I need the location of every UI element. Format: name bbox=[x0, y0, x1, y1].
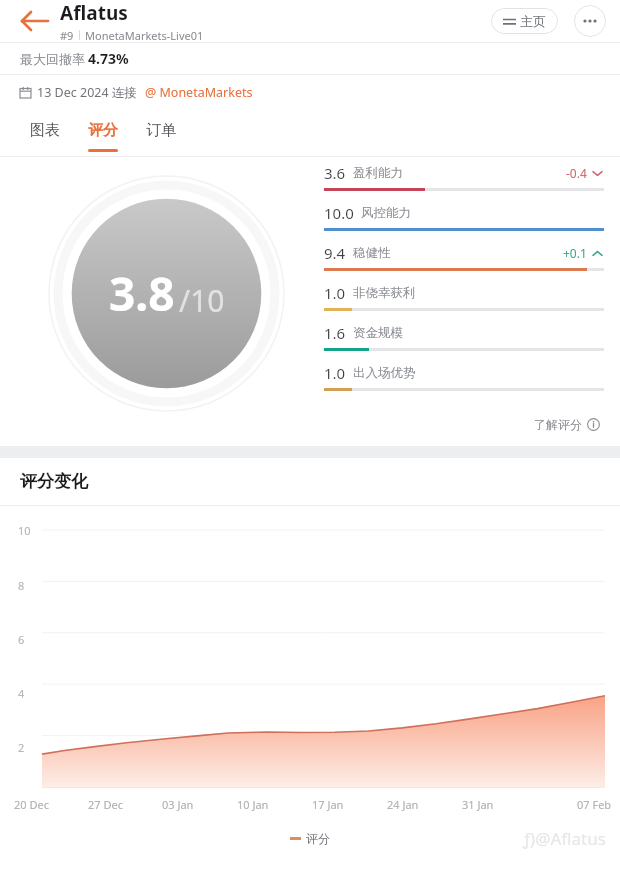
staticText: 出入场优势 bbox=[353, 365, 416, 381]
staticText: 17 Jan bbox=[312, 797, 344, 812]
staticText: 4 bbox=[18, 686, 25, 701]
staticText: -0.4 bbox=[566, 165, 587, 181]
staticText: 最大回撤率 bbox=[20, 51, 85, 67]
staticText: 稳健性 bbox=[353, 245, 391, 261]
staticText: 评分 bbox=[306, 831, 330, 846]
button[interactable]: More options bbox=[574, 5, 606, 37]
staticText: 1.0 bbox=[324, 363, 346, 383]
button[interactable]: 9.4 bbox=[324, 243, 604, 283]
staticText: 3.8 bbox=[109, 262, 175, 325]
staticText: +0.1 bbox=[563, 245, 587, 261]
staticText: #9 bbox=[60, 28, 74, 42]
button[interactable]: 10.0 bbox=[324, 203, 604, 243]
staticText: 3.6 bbox=[324, 163, 346, 183]
staticText: MonetaMarkets-Live01 bbox=[85, 28, 204, 42]
staticText: Aflatus bbox=[60, 0, 128, 26]
staticText: 主页 bbox=[520, 13, 546, 29]
button[interactable]: 主页 bbox=[491, 8, 558, 34]
staticText: 评分变化 bbox=[20, 471, 88, 492]
staticText: 10 bbox=[18, 523, 31, 538]
staticText: 盈利能力 bbox=[353, 165, 403, 181]
staticText: 07 Feb bbox=[577, 797, 612, 812]
button[interactable]: 了解评分 bbox=[530, 413, 604, 436]
staticText: 订单 bbox=[146, 121, 176, 140]
staticText: 了解评分 bbox=[534, 417, 582, 432]
staticText: 10 Jan bbox=[237, 797, 269, 812]
staticText: @ MonetaMarkets bbox=[145, 84, 253, 101]
staticText: 4.73% bbox=[88, 49, 129, 68]
staticText: /10 bbox=[179, 280, 225, 321]
staticText: 24 Jan bbox=[387, 797, 419, 812]
button[interactable]: 订单 bbox=[132, 109, 190, 157]
staticText: 9.4 bbox=[324, 243, 346, 263]
staticText: ƒ)@Aflatus bbox=[523, 827, 606, 850]
button[interactable]: Back bbox=[18, 4, 52, 38]
button[interactable]: 3.6 bbox=[324, 163, 604, 203]
staticText: 03 Jan bbox=[162, 797, 194, 812]
button[interactable]: 评分 bbox=[74, 109, 132, 157]
staticText: 资金规模 bbox=[353, 325, 403, 341]
staticText: 2 bbox=[18, 740, 25, 755]
button[interactable]: 1.0 bbox=[324, 363, 604, 403]
staticText: 1.6 bbox=[324, 323, 346, 343]
button[interactable]: 图表 bbox=[16, 109, 74, 157]
staticText: 风控能力 bbox=[361, 205, 411, 221]
button[interactable]: 1.0 bbox=[324, 283, 604, 323]
staticText: 1.0 bbox=[324, 283, 346, 303]
staticText: 8 bbox=[18, 578, 25, 593]
staticText: 6 bbox=[18, 632, 25, 647]
staticText: 非侥幸获利 bbox=[353, 285, 416, 301]
staticText: 图表 bbox=[30, 121, 60, 140]
staticText: 20 Dec bbox=[14, 797, 49, 812]
staticText: 13 Dec 2024 连接 bbox=[37, 84, 137, 101]
button[interactable]: 1.6 bbox=[324, 323, 604, 363]
staticText: 31 Jan bbox=[462, 797, 494, 812]
staticText: 10.0 bbox=[324, 203, 354, 223]
staticText: 27 Dec bbox=[88, 797, 123, 812]
staticText: 评分 bbox=[88, 121, 118, 140]
